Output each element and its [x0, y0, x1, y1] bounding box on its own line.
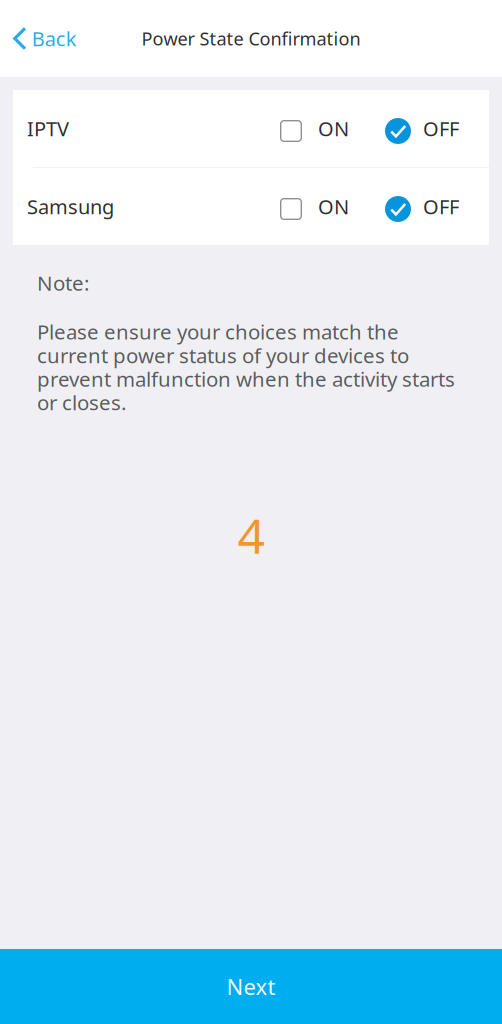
staticText: Next	[226, 971, 275, 1001]
staticText: Samsung	[27, 193, 114, 220]
staticText: ON	[318, 115, 349, 142]
staticText: IPTV	[27, 115, 69, 142]
staticText: OFF	[423, 193, 459, 220]
button[interactable]: Next	[0, 949, 502, 1024]
staticText: ON	[318, 193, 349, 220]
staticText: Note:	[37, 269, 89, 297]
button[interactable]: IPTV	[13, 90, 489, 167]
staticText: Please ensure your choices match the cur…	[37, 318, 455, 416]
staticText: OFF	[423, 115, 459, 142]
staticText: Power State Confirmation	[141, 26, 360, 51]
staticText: 4	[237, 502, 264, 568]
button[interactable]: Samsung	[13, 168, 489, 245]
staticText: Back	[32, 25, 77, 52]
button[interactable]: Back	[0, 14, 91, 62]
